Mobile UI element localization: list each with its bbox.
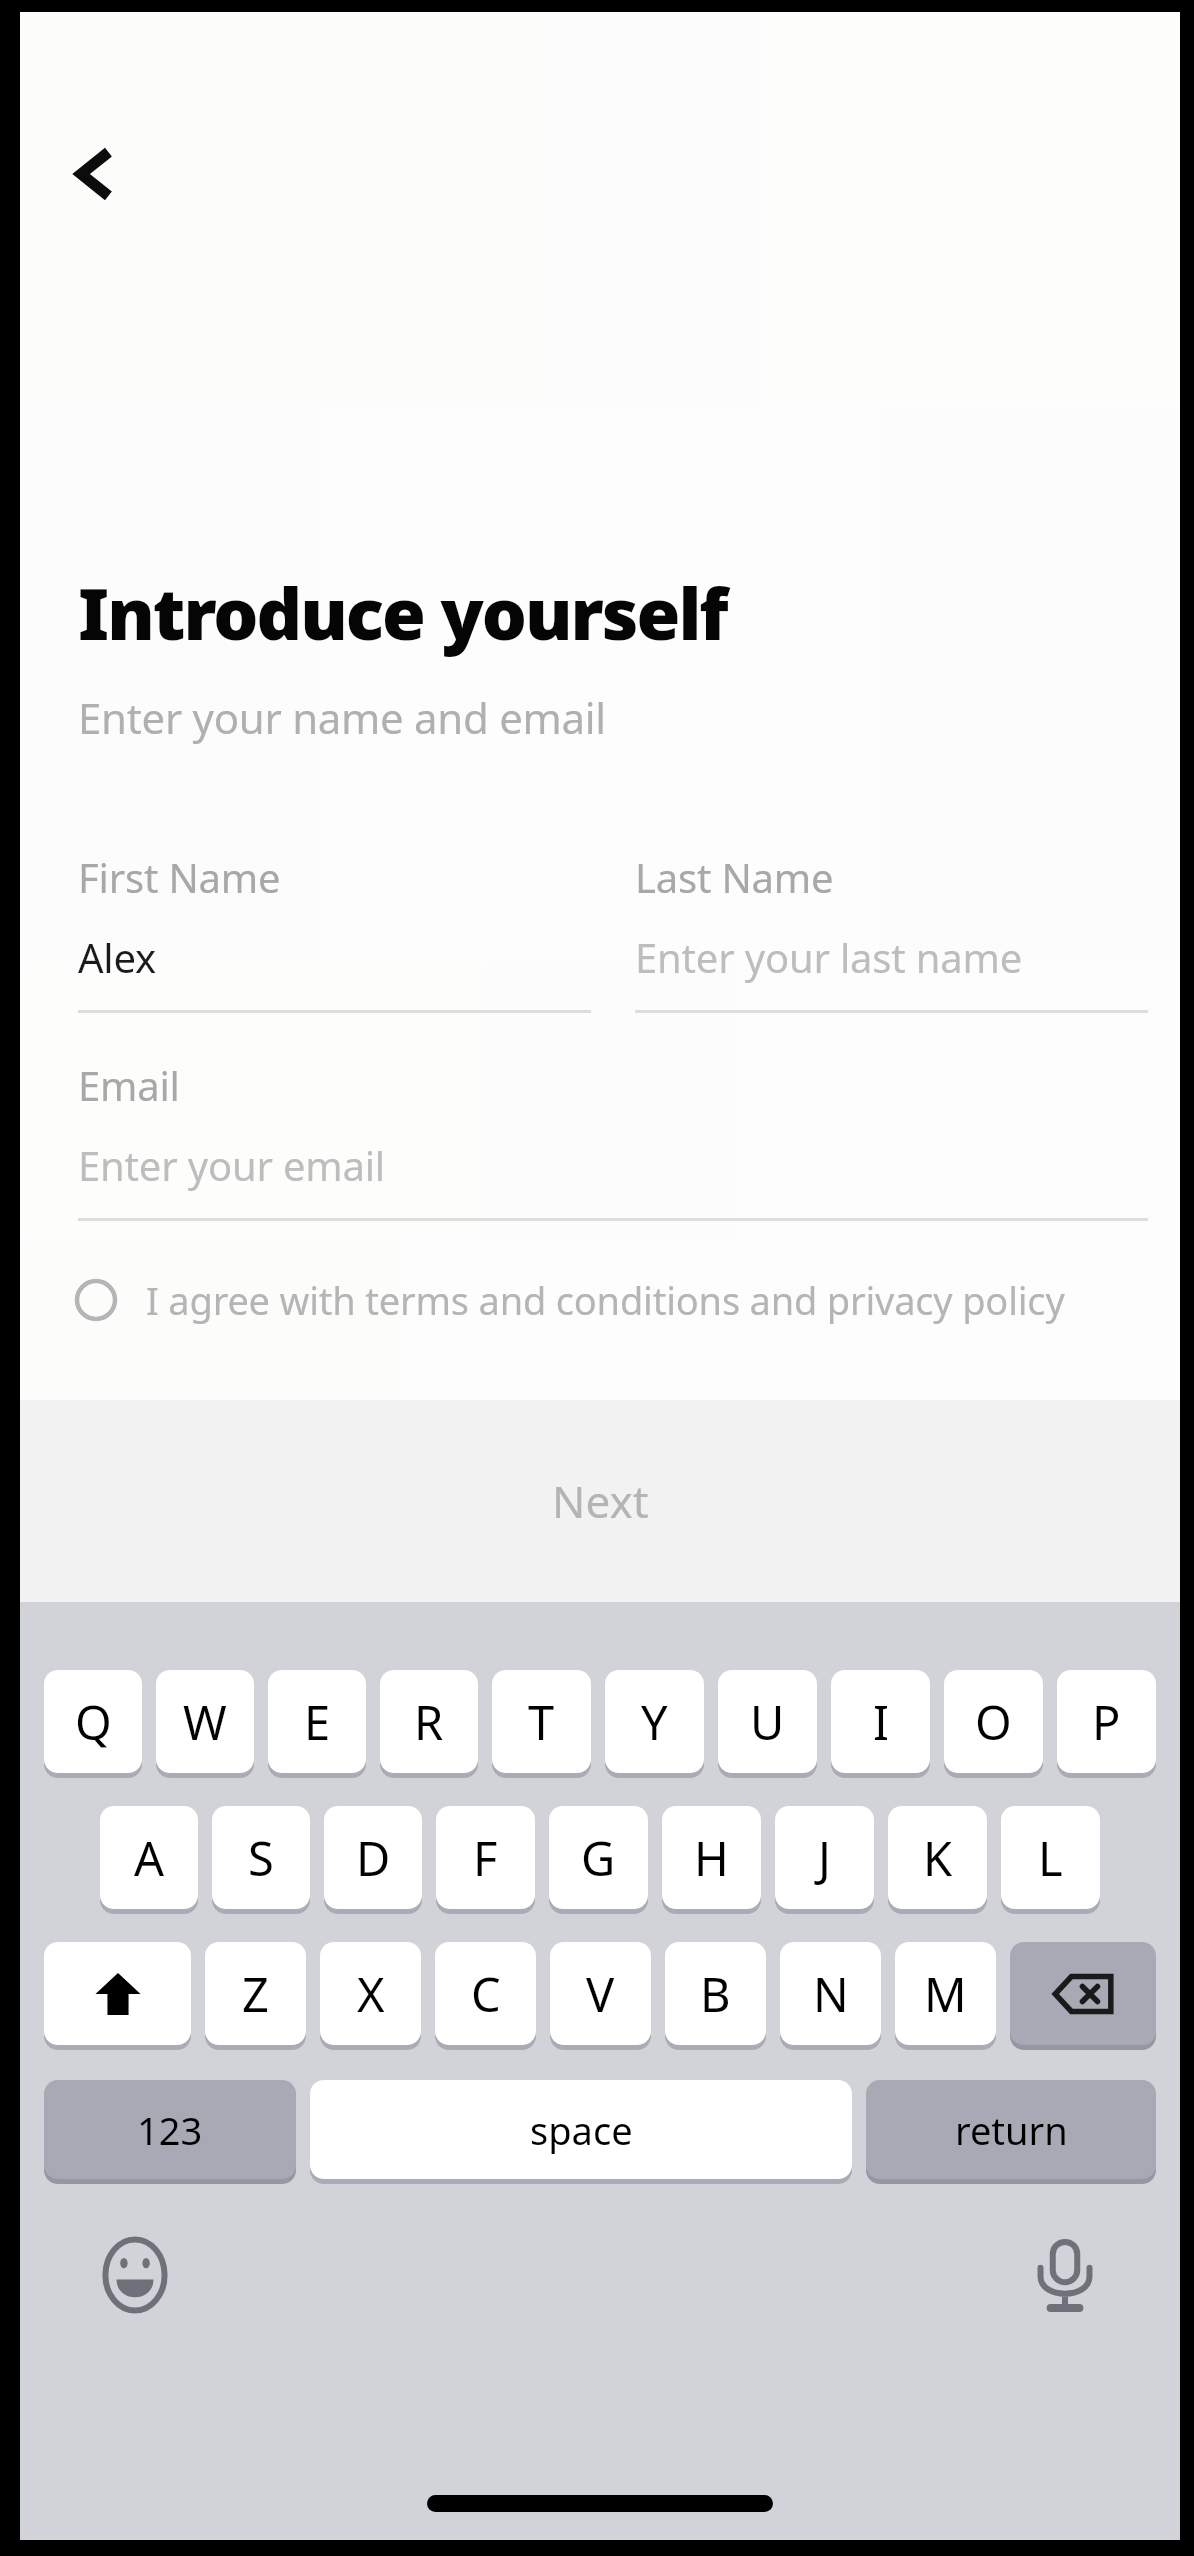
staticText: S	[248, 1826, 274, 1890]
button[interactable]: X	[320, 1942, 421, 2050]
staticText: E	[304, 1690, 331, 1754]
button[interactable]: Back	[50, 130, 138, 218]
staticText: Email	[78, 1058, 180, 1112]
button[interactable]: H	[662, 1806, 761, 1914]
button[interactable]: Z	[205, 1942, 306, 2050]
button[interactable]: O	[944, 1670, 1043, 1778]
staticText: I	[873, 1690, 889, 1754]
staticText: space	[530, 2104, 633, 2156]
button[interactable]: L	[1001, 1806, 1100, 1914]
button[interactable]: W	[156, 1670, 254, 1778]
button[interactable]: Emoji keyboard	[92, 2232, 178, 2318]
staticText: U	[750, 1690, 785, 1754]
staticText: W	[183, 1690, 227, 1754]
button[interactable]: S	[212, 1806, 310, 1914]
button[interactable]: M	[895, 1942, 996, 2050]
staticText: Y	[641, 1690, 668, 1754]
button[interactable]: U	[718, 1670, 817, 1778]
staticText: L	[1038, 1826, 1063, 1890]
button[interactable]: P	[1057, 1670, 1156, 1778]
staticText: P	[1092, 1690, 1121, 1754]
staticText: First Name	[78, 850, 281, 904]
button[interactable]: A	[100, 1806, 198, 1914]
button[interactable]: D	[324, 1806, 422, 1914]
staticText: Z	[242, 1962, 269, 2026]
button[interactable]: Q	[44, 1670, 142, 1778]
staticText: D	[356, 1826, 391, 1890]
button[interactable]: Last Name	[635, 850, 1148, 1013]
staticText: C	[471, 1962, 501, 2026]
button[interactable]: Shift	[44, 1942, 191, 2050]
button[interactable]: G	[549, 1806, 648, 1914]
button[interactable]: space	[310, 2080, 852, 2184]
staticText: R	[414, 1690, 444, 1754]
staticText: B	[700, 1962, 731, 2026]
button[interactable]: F	[436, 1806, 535, 1914]
staticText: K	[923, 1826, 953, 1890]
staticText: T	[528, 1690, 555, 1754]
button[interactable]: Delete	[1010, 1942, 1156, 2050]
button[interactable]: C	[435, 1942, 536, 2050]
button[interactable]: T	[492, 1670, 591, 1778]
staticText: O	[975, 1690, 1012, 1754]
button[interactable]: First Name	[78, 850, 591, 1013]
staticText: A	[134, 1826, 165, 1890]
button[interactable]: Dictation	[1022, 2232, 1108, 2318]
button[interactable]: Y	[605, 1670, 704, 1778]
staticText: X	[357, 1962, 385, 2026]
staticText: Enter your name and email	[78, 689, 606, 746]
button[interactable]: B	[665, 1942, 766, 2050]
button[interactable]: K	[888, 1806, 987, 1914]
staticText: J	[818, 1826, 831, 1890]
staticText: M	[924, 1962, 967, 2026]
staticText: G	[581, 1826, 616, 1890]
staticText: N	[813, 1962, 849, 2026]
staticText: F	[473, 1826, 498, 1890]
button[interactable]: Next	[20, 1400, 1180, 1602]
button[interactable]: return	[866, 2080, 1156, 2184]
button[interactable]: Email	[78, 1058, 1148, 1221]
staticText: Enter your email	[78, 1138, 385, 1192]
staticText: Introduce yourself	[78, 564, 727, 661]
staticText: 123	[137, 2104, 203, 2156]
button[interactable]: 123	[44, 2080, 296, 2184]
staticText: V	[586, 1962, 615, 2026]
button[interactable]: R	[380, 1670, 478, 1778]
staticText: Q	[75, 1690, 112, 1754]
button[interactable]: I agree with terms and conditions and pr…	[74, 1274, 1148, 1326]
button[interactable]: V	[550, 1942, 651, 2050]
staticText: H	[694, 1826, 729, 1890]
button[interactable]: N	[780, 1942, 881, 2050]
staticText: Alex	[78, 930, 156, 984]
button[interactable]: I	[831, 1670, 930, 1778]
staticText: Enter your last name	[635, 930, 1022, 984]
button[interactable]: E	[268, 1670, 366, 1778]
staticText: Last Name	[635, 850, 834, 904]
button[interactable]: J	[775, 1806, 874, 1914]
staticText: I agree with terms and conditions and pr…	[146, 1274, 1065, 1326]
staticText: return	[955, 2104, 1068, 2156]
staticText: Next	[552, 1471, 649, 1531]
